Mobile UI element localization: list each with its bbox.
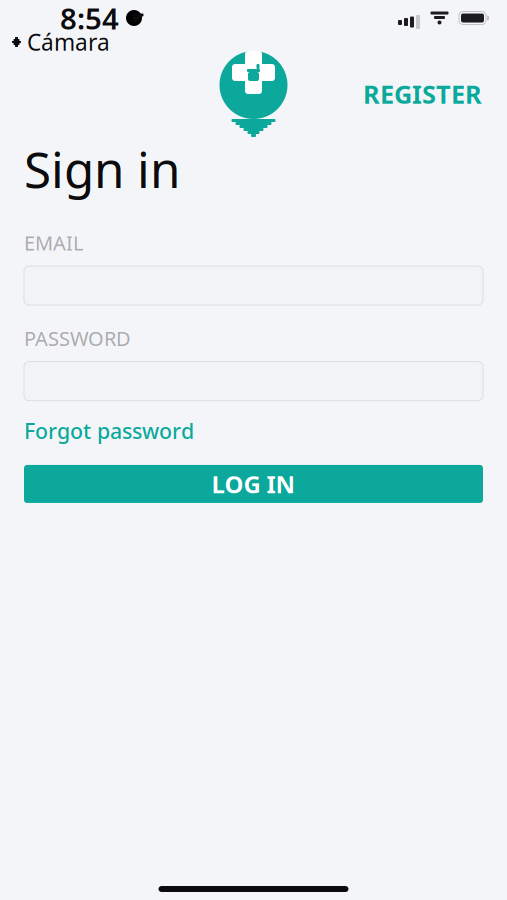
button[interactable]: PASSWORD xyxy=(24,362,483,401)
staticText: EMAIL xyxy=(24,229,83,256)
staticText: Forgot password xyxy=(24,417,194,445)
button[interactable]: REGISTER xyxy=(355,67,490,121)
button[interactable]: LOG IN xyxy=(24,465,483,503)
staticText: PASSWORD xyxy=(24,325,131,352)
staticText: LOG IN xyxy=(211,468,295,500)
staticText: Sign in xyxy=(24,136,180,201)
staticText: Cámara xyxy=(27,27,110,57)
staticText: REGISTER xyxy=(363,77,482,111)
button[interactable]: Forgot password xyxy=(24,413,194,449)
staticText: 8:54 xyxy=(60,0,119,37)
